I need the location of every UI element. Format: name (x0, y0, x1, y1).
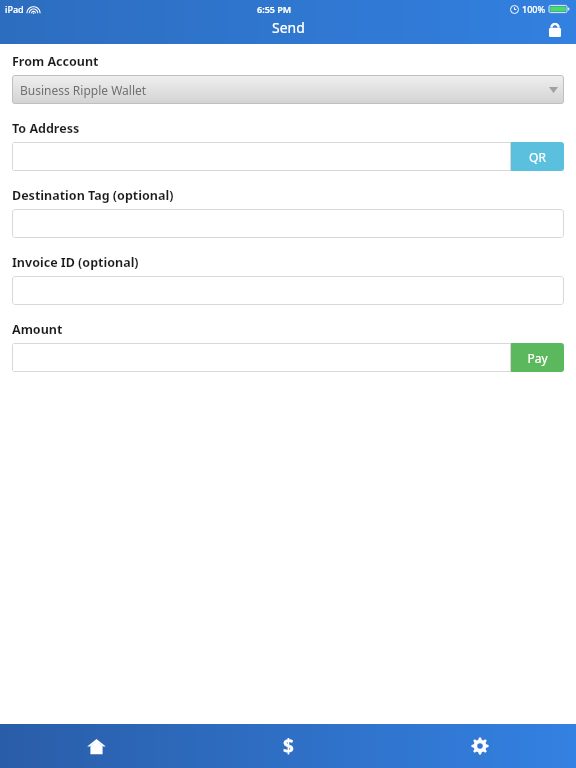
staticText: Destination Tag (optional) (12, 187, 174, 204)
staticText: QR (529, 149, 546, 165)
button[interactable] (12, 209, 564, 238)
staticText: Invoice ID (optional) (12, 254, 139, 271)
button[interactable] (12, 276, 564, 305)
button[interactable]: Settings (384, 724, 576, 768)
button[interactable]: Lock (544, 17, 566, 39)
staticText: Amount (12, 321, 63, 338)
staticText: Pay (527, 350, 548, 366)
button[interactable]: Home (0, 724, 192, 768)
button[interactable]: Business Ripple Wallet (12, 75, 564, 104)
staticText: From Account (12, 53, 99, 70)
button[interactable]: Payments (192, 724, 384, 768)
staticText: iPad (5, 3, 24, 15)
staticText: 100% (522, 3, 546, 15)
staticText: Send (272, 18, 305, 37)
button[interactable] (12, 343, 511, 372)
staticText: To Address (12, 120, 80, 137)
staticText: 6:55 PM (257, 3, 292, 15)
staticText: $ (283, 733, 294, 759)
staticText: Business Ripple Wallet (20, 82, 542, 98)
button[interactable]: Pay (511, 343, 564, 372)
button[interactable]: QR (511, 142, 564, 171)
button[interactable] (12, 142, 511, 171)
